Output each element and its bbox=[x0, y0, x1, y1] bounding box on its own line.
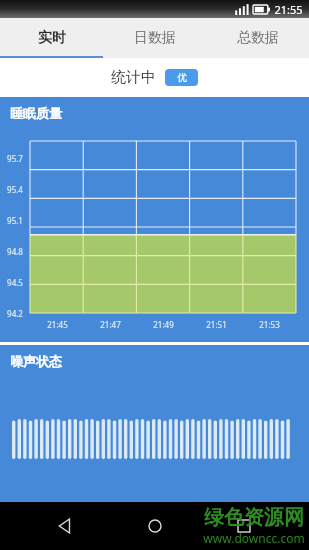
staticText: www.downcc.com bbox=[203, 530, 305, 546]
staticText: 21:49 bbox=[153, 319, 174, 330]
button[interactable]: 优 bbox=[165, 69, 198, 86]
staticText: 噪声状态 bbox=[10, 353, 62, 369]
button[interactable]: 实时 bbox=[0, 18, 103, 58]
staticText: 21:51 bbox=[206, 319, 227, 330]
staticText: 21:47 bbox=[100, 319, 121, 330]
staticText: 睡眠质量 bbox=[10, 105, 62, 121]
staticText: 95.7 bbox=[4, 153, 26, 164]
button[interactable]: Home bbox=[131, 502, 179, 550]
button[interactable]: Recents bbox=[220, 502, 268, 550]
button[interactable]: Back bbox=[41, 502, 89, 550]
staticText: 实时 bbox=[38, 29, 66, 47]
staticText: 日数据 bbox=[134, 29, 176, 47]
staticText: 绿色资源网 bbox=[204, 505, 304, 530]
staticText: 21:55 bbox=[274, 2, 303, 17]
staticText: 21:53 bbox=[259, 319, 280, 330]
staticText: 94.2 bbox=[4, 308, 26, 319]
button[interactable]: 总数据 bbox=[206, 18, 309, 58]
staticText: 94.5 bbox=[4, 277, 26, 288]
staticText: 21:45 bbox=[47, 319, 68, 330]
staticText: 95.1 bbox=[4, 215, 26, 226]
staticText: 统计中 bbox=[111, 68, 156, 87]
staticText: 94.8 bbox=[4, 246, 26, 257]
staticText: 优 bbox=[177, 71, 187, 84]
button[interactable]: 日数据 bbox=[103, 18, 206, 58]
staticText: 95.4 bbox=[4, 184, 26, 195]
staticText: 总数据 bbox=[237, 29, 279, 47]
